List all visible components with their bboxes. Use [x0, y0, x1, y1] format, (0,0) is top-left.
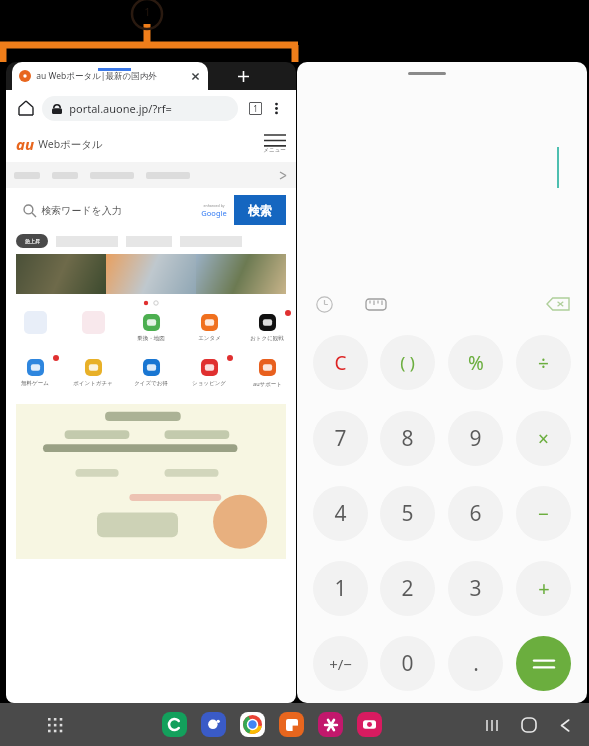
- button[interactable]: クイズでお得: [122, 353, 180, 398]
- button[interactable]: Phone: [162, 712, 187, 737]
- button[interactable]: 4: [313, 486, 368, 541]
- button[interactable]: .: [448, 636, 503, 691]
- staticText: 検索ワードを入力: [41, 204, 122, 217]
- button[interactable]: Notes: [279, 712, 304, 737]
- button[interactable]: Unit converter: [363, 291, 389, 317]
- button[interactable]: Home: [511, 707, 547, 743]
- button[interactable]: portal.auone.jp/?rf=: [42, 96, 238, 121]
- button[interactable]: Home: [16, 98, 36, 118]
- button[interactable]: C: [313, 335, 368, 390]
- button[interactable]: +: [516, 561, 571, 616]
- staticText: Webポータル: [38, 137, 103, 151]
- staticText: 0: [401, 649, 414, 678]
- button[interactable]: [6, 308, 64, 353]
- button[interactable]: History: [311, 291, 337, 317]
- staticText: 8: [401, 424, 414, 453]
- button[interactable]: ポイントガチャ: [64, 353, 122, 398]
- button[interactable]: [16, 254, 286, 294]
- staticText: 6: [469, 499, 482, 528]
- button[interactable]: 8: [380, 411, 435, 466]
- button[interactable]: ×: [516, 411, 571, 466]
- button[interactable]: 1: [313, 561, 368, 616]
- staticText: auサポート: [253, 380, 282, 388]
- button[interactable]: auサポート: [238, 353, 296, 398]
- button[interactable]: %: [448, 335, 503, 390]
- button[interactable]: 9: [448, 411, 503, 466]
- button[interactable]: Tabs: [244, 97, 266, 119]
- button[interactable]: 急上昇: [16, 234, 48, 248]
- staticText: 4: [334, 499, 347, 528]
- staticText: .: [473, 649, 479, 678]
- button[interactable]: Close tab: [190, 71, 201, 82]
- staticText: ÷: [538, 350, 549, 376]
- button[interactable]: 6: [448, 486, 503, 541]
- staticText: 乗換・地図: [137, 335, 165, 342]
- staticText: au: [16, 134, 34, 154]
- button[interactable]: Galaxy Store: [318, 712, 343, 737]
- button[interactable]: 2: [380, 561, 435, 616]
- staticText: ×: [538, 426, 549, 452]
- button[interactable]: 乗換・地図: [122, 308, 180, 353]
- button[interactable]: ( ): [380, 335, 435, 390]
- staticText: 7: [334, 424, 347, 453]
- staticText: +/−: [329, 654, 352, 674]
- button[interactable]: 検索ワードを入力: [16, 195, 234, 225]
- button[interactable]: 5: [380, 486, 435, 541]
- staticText: Google: [201, 208, 227, 218]
- button[interactable]: au Webポータル|最新の国内外: [12, 62, 208, 90]
- button[interactable]: Camera: [357, 712, 382, 737]
- staticText: 検索: [248, 203, 272, 218]
- staticText: ポイントガチャ: [73, 380, 113, 387]
- button[interactable]: −: [516, 486, 571, 541]
- button[interactable]: ショッピング: [180, 353, 238, 398]
- staticText: 9: [469, 424, 482, 453]
- staticText: 2: [401, 574, 414, 603]
- staticText: クイズでお得: [134, 380, 168, 387]
- button[interactable]: Recent apps: [475, 707, 511, 743]
- staticText: 無料ゲーム: [21, 380, 49, 387]
- staticText: 1: [334, 574, 347, 603]
- button[interactable]: Menu: [263, 135, 286, 154]
- button[interactable]: Apps: [40, 710, 70, 740]
- staticText: エンタメ: [198, 335, 221, 342]
- staticText: −: [538, 501, 549, 527]
- staticText: 3: [469, 574, 482, 603]
- button[interactable]: +/−: [313, 636, 368, 691]
- staticText: おトクに観戦: [250, 335, 284, 342]
- button[interactable]: 検索: [234, 195, 286, 225]
- button[interactable]: エンタメ: [180, 308, 238, 353]
- staticText: ( ): [400, 351, 415, 374]
- button[interactable]: 0: [380, 636, 435, 691]
- staticText: 1: [144, 4, 151, 19]
- staticText: enhanced by: [203, 203, 225, 208]
- staticText: 1: [253, 103, 258, 114]
- button[interactable]: New tab: [228, 62, 258, 90]
- button[interactable]: 無料ゲーム: [6, 353, 64, 398]
- button[interactable]: 3: [448, 561, 503, 616]
- button[interactable]: [64, 308, 122, 353]
- button[interactable]: Back: [547, 707, 583, 743]
- staticText: メニュー: [263, 147, 286, 154]
- staticText: 5: [401, 499, 414, 528]
- button[interactable]: Backspace: [543, 289, 573, 319]
- staticText: au Webポータル|最新の国内外: [36, 70, 157, 82]
- button[interactable]: [16, 404, 286, 559]
- button[interactable]: 7: [313, 411, 368, 466]
- button[interactable]: おトクに観戦: [238, 308, 296, 353]
- staticText: 急上昇: [25, 238, 40, 244]
- staticText: ショッピング: [192, 380, 226, 387]
- button[interactable]: Messages: [201, 712, 226, 737]
- button[interactable]: More options: [266, 98, 286, 118]
- button[interactable]: Chrome: [240, 712, 265, 737]
- staticText: C: [334, 350, 347, 376]
- staticText: %: [468, 350, 484, 376]
- staticText: portal.auone.jp/?rf=: [69, 101, 172, 116]
- button[interactable]: ÷: [516, 335, 571, 390]
- staticText: +: [538, 575, 550, 602]
- button[interactable]: [516, 636, 571, 691]
